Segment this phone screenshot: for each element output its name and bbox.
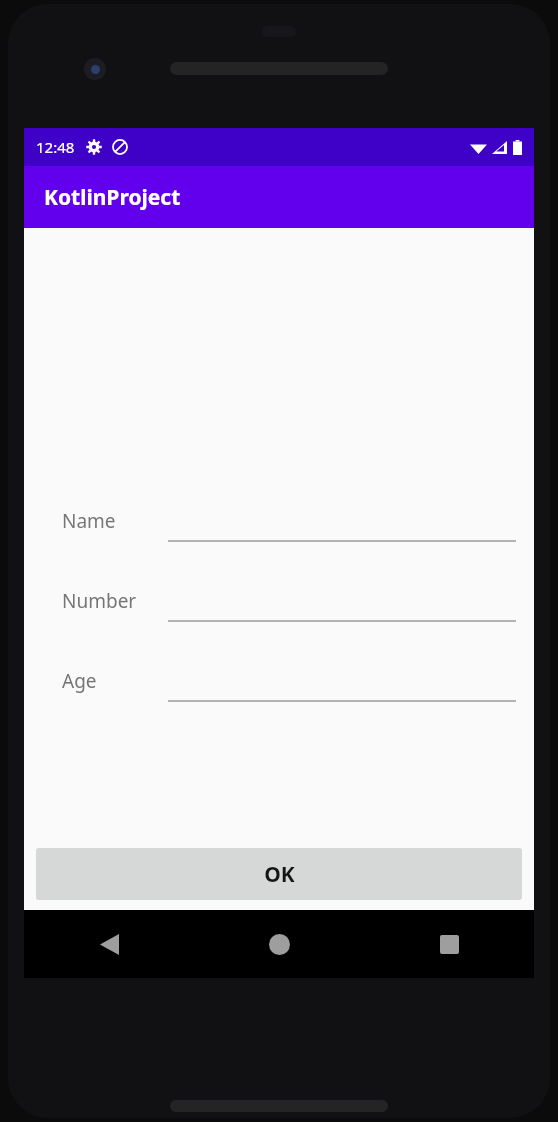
staticText: 12:48 [36,137,75,157]
button[interactable]: OK [36,848,522,900]
staticText: Age [62,668,97,694]
button[interactable]: Home [194,910,364,978]
button[interactable]: Recent apps [364,910,534,978]
button[interactable]: Number [24,580,534,622]
button[interactable]: Age [24,660,534,702]
staticText: Name [62,508,116,534]
staticText: Number [62,588,137,614]
staticText: OK [264,860,295,889]
button[interactable]: Name [24,500,534,542]
button[interactable]: Back [24,910,194,978]
staticText: KotlinProject [44,183,181,212]
